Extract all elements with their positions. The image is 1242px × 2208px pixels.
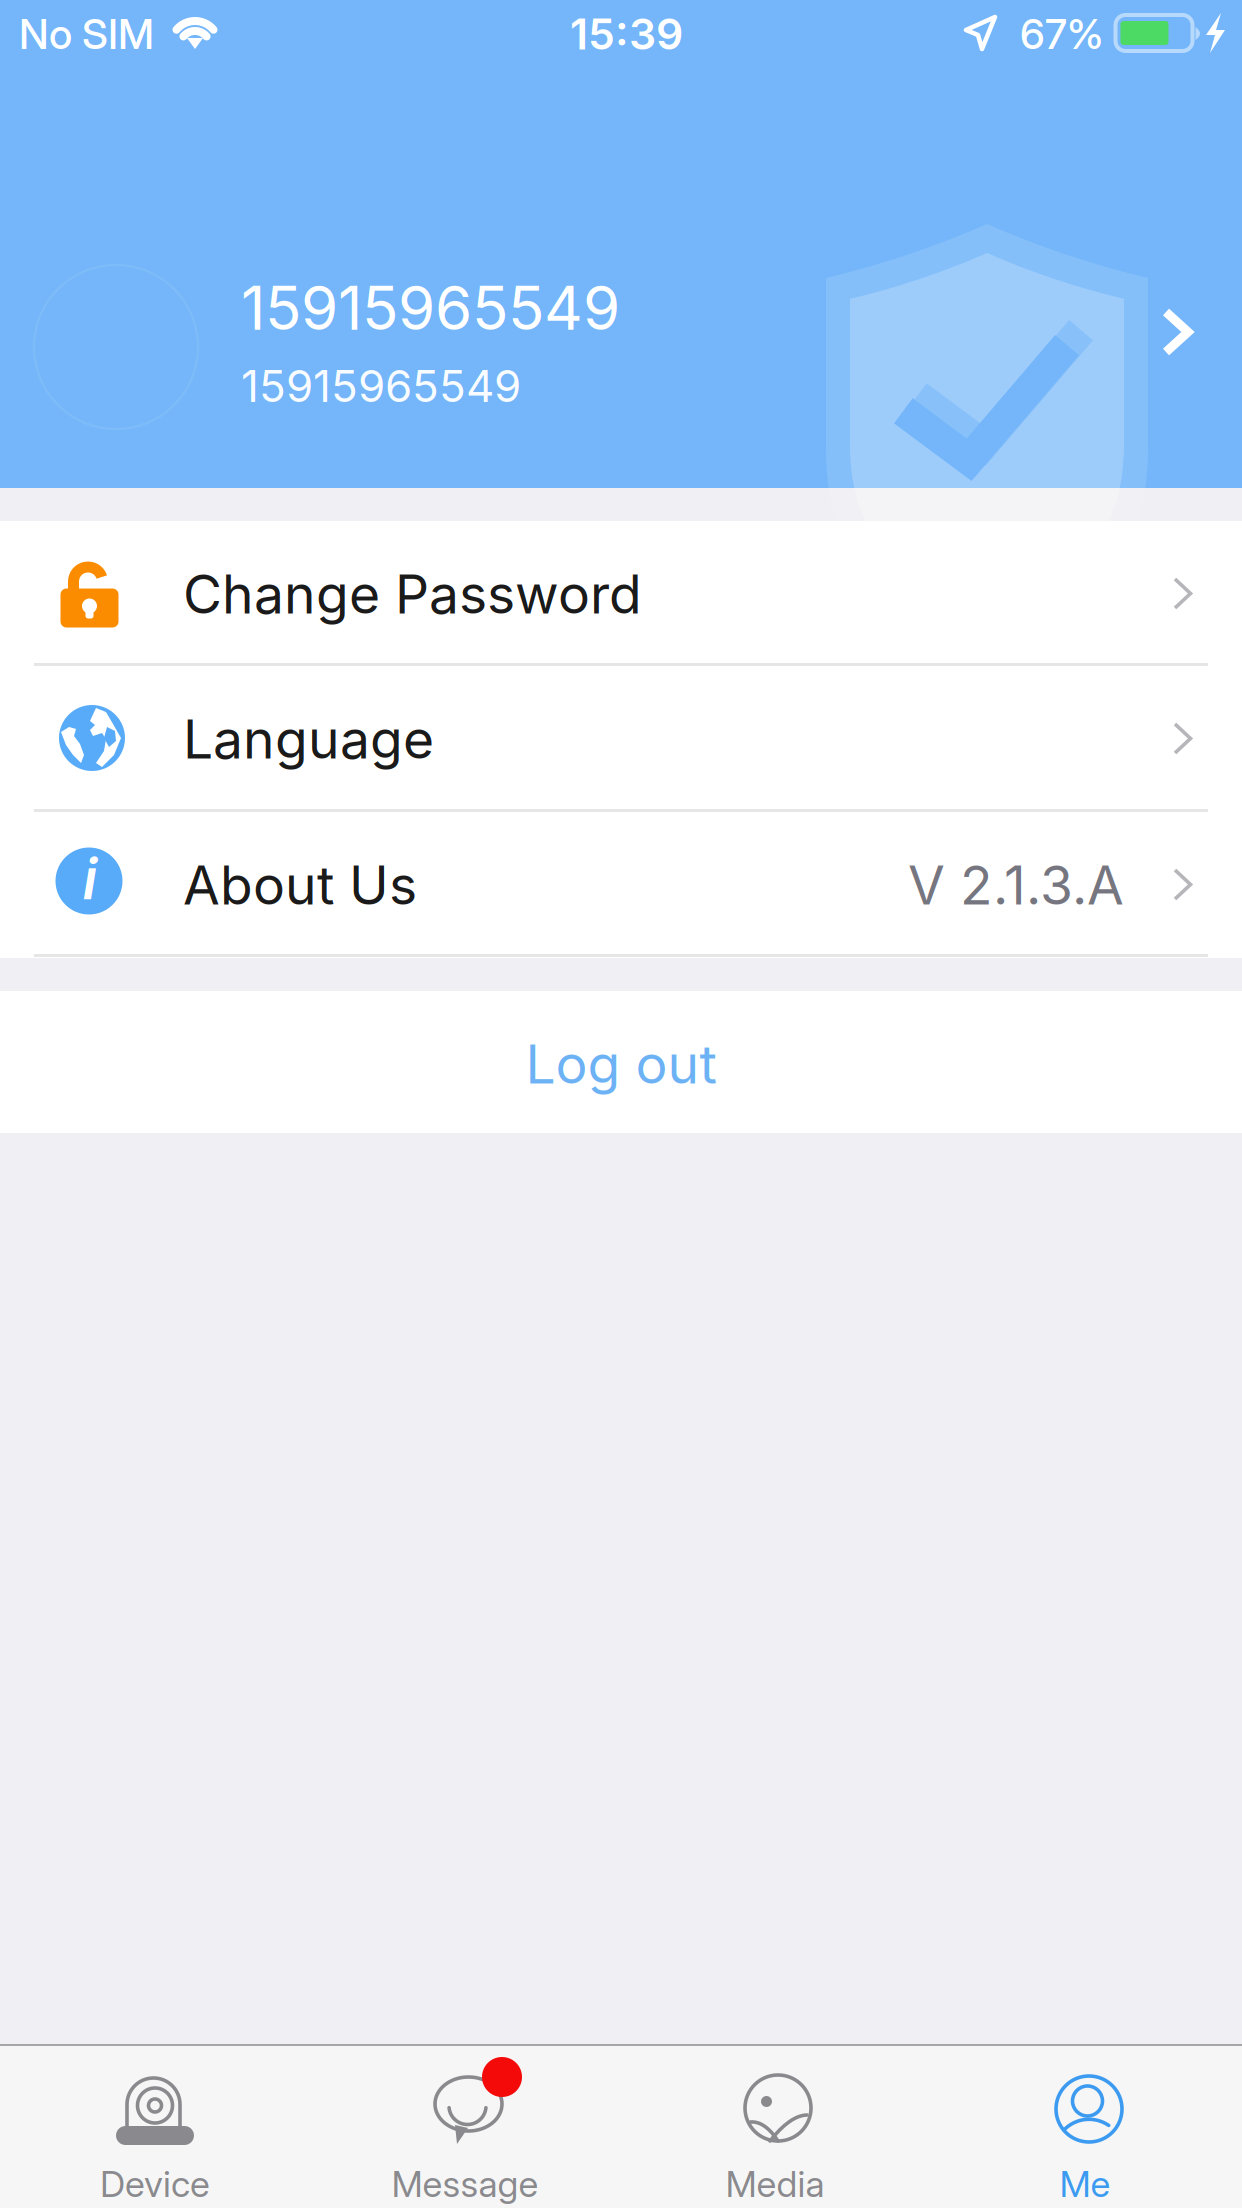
staticText: Device <box>100 2162 210 2206</box>
staticText: Media <box>725 2162 824 2206</box>
staticText: V 2.1.3.A <box>908 853 1124 917</box>
button[interactable]: Change Password <box>0 521 1242 667</box>
staticText: i <box>82 845 97 913</box>
staticText: Change Password <box>183 562 642 626</box>
button[interactable]: Me <box>930 2045 1240 2208</box>
staticText: 15:39 <box>570 8 683 60</box>
staticText: 15915965549 <box>241 272 620 344</box>
staticText: Language <box>183 707 434 771</box>
button[interactable]: i <box>0 812 1242 958</box>
staticText: Message <box>391 2162 538 2206</box>
staticText: 67% <box>1020 9 1103 59</box>
staticText: Me <box>1059 2162 1110 2206</box>
button[interactable]: Device <box>0 2045 310 2208</box>
button[interactable]: Media <box>620 2045 930 2208</box>
button[interactable]: Language <box>0 666 1242 812</box>
staticText: Log out <box>525 1032 716 1096</box>
button[interactable]: Log out <box>0 991 1242 1133</box>
button[interactable]: Account 15915965549 <box>0 88 1242 488</box>
staticText: 15915965549 <box>241 359 521 413</box>
button[interactable]: Message <box>310 2045 620 2208</box>
staticText: About Us <box>183 853 417 917</box>
staticText: No SIM <box>19 9 154 59</box>
